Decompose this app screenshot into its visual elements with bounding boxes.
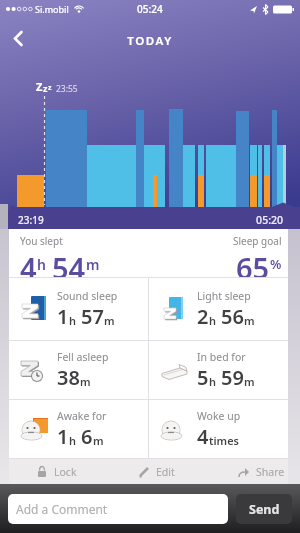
staticText: Sound sleep <box>57 289 118 303</box>
staticText: Woke up <box>197 409 241 423</box>
button[interactable]: Edit <box>137 462 175 482</box>
staticText: h <box>69 433 77 448</box>
staticText: m <box>244 374 255 389</box>
staticText: 56 <box>221 303 244 330</box>
staticText: Awake for <box>57 409 107 423</box>
staticText: h <box>69 313 77 328</box>
staticText: 5 <box>197 364 209 391</box>
staticText: 23:55 <box>56 83 78 95</box>
staticText: h <box>209 313 217 328</box>
staticText: m <box>104 313 115 328</box>
button[interactable]: Share <box>237 462 285 482</box>
staticText: 38 <box>57 364 80 391</box>
staticText: 6 <box>81 423 93 450</box>
button[interactable] <box>6 26 30 50</box>
staticText: Lock <box>54 465 77 479</box>
button[interactable]: Sound sleep <box>9 278 148 340</box>
staticText: z <box>48 83 52 93</box>
staticText: 57 <box>81 303 104 330</box>
staticText: You slept <box>20 234 63 248</box>
staticText: TODAY <box>0 33 300 49</box>
button[interactable]: In bed for <box>149 341 288 399</box>
button[interactable]: Light sleep <box>149 278 288 340</box>
staticText: Sleep goal <box>233 234 282 248</box>
staticText: m <box>86 255 100 274</box>
staticText: 2 <box>197 303 209 330</box>
button[interactable]: Awake for <box>9 400 148 458</box>
staticText: 1 <box>57 423 69 450</box>
staticText: times <box>209 433 239 448</box>
staticText: In bed for <box>197 350 246 364</box>
staticText: 4 <box>197 423 209 450</box>
staticText: Add a Comment <box>16 501 108 517</box>
staticText: m <box>93 433 104 448</box>
button[interactable]: Lock <box>35 462 77 482</box>
button[interactable]: Fell asleep <box>9 341 148 399</box>
staticText: 1 <box>57 303 69 330</box>
staticText: Light sleep <box>197 289 251 303</box>
staticText: Z <box>36 79 43 94</box>
staticText: Send <box>249 501 280 518</box>
staticText: 59 <box>221 364 244 391</box>
staticText: h <box>37 255 46 274</box>
staticText: m <box>244 313 255 328</box>
staticText: Si.mobil <box>35 3 69 15</box>
button[interactable]: Woke up <box>149 400 288 458</box>
staticText: 65 <box>236 248 270 277</box>
staticText: 54 <box>52 248 86 277</box>
staticText: 4 <box>20 248 37 277</box>
staticText: Edit <box>156 465 175 479</box>
staticText: Share <box>256 465 285 479</box>
staticText: Fell asleep <box>57 350 109 364</box>
staticText: 05:24 <box>137 2 163 16</box>
button[interactable]: Send <box>236 494 292 524</box>
staticText: % <box>270 255 282 273</box>
staticText: 05:20 <box>0 213 283 227</box>
button[interactable]: Add a Comment <box>8 494 228 524</box>
staticText: m <box>80 374 91 389</box>
staticText: h <box>209 374 217 389</box>
staticText: 23:19 <box>18 213 44 227</box>
staticText: z <box>43 82 48 94</box>
